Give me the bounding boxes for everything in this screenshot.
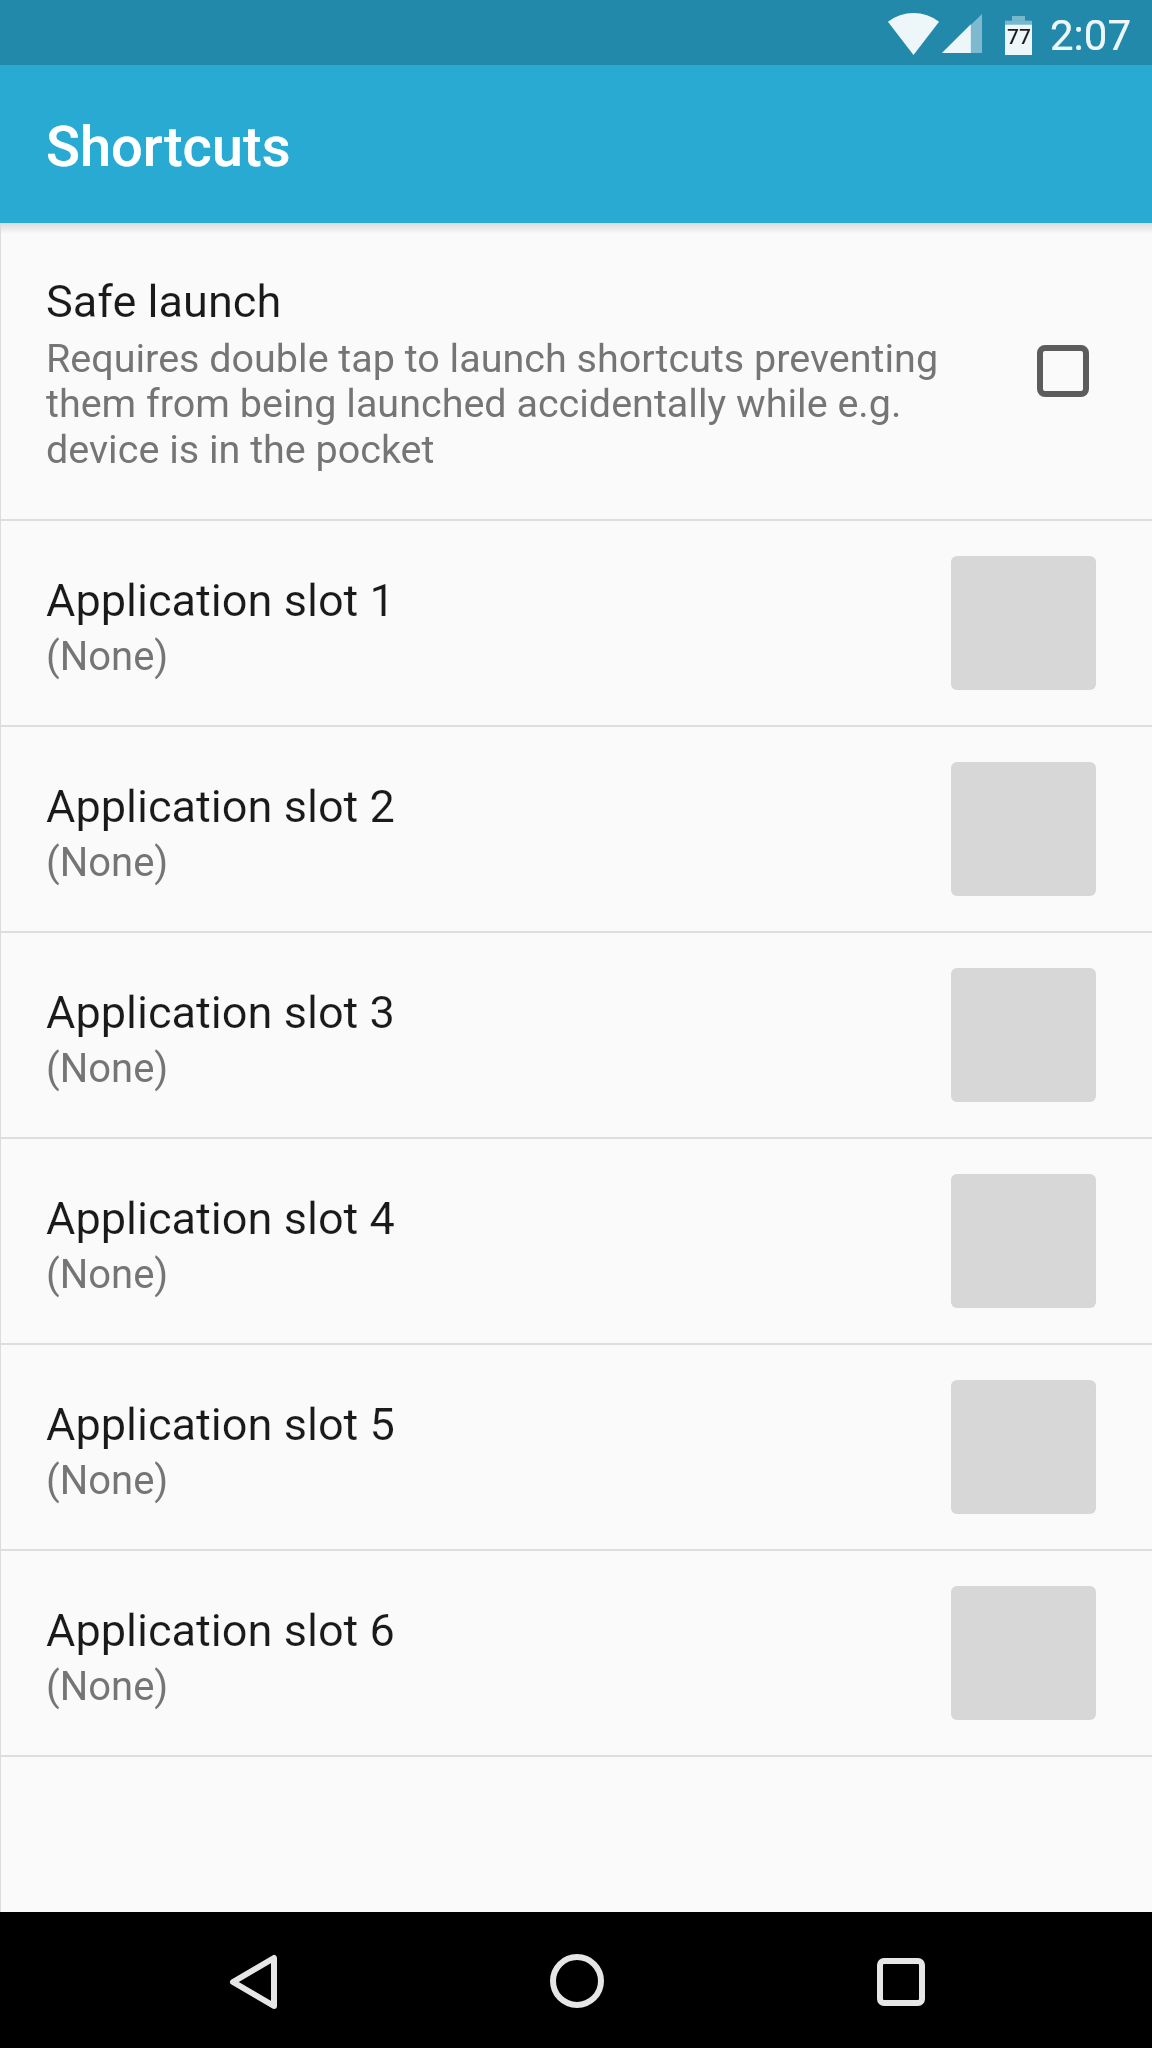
button[interactable]: Recents	[841, 1922, 961, 2042]
staticText: Safe launch	[46, 275, 282, 328]
button[interactable]: Application slot 1	[0, 521, 1152, 725]
button[interactable]: Safe launch checkbox	[989, 297, 1137, 445]
button[interactable]: Home	[517, 1921, 637, 2041]
staticText: 77	[1007, 25, 1031, 50]
staticText: (None)	[46, 1045, 169, 1092]
staticText: (None)	[46, 1457, 169, 1504]
staticText: (None)	[46, 1251, 169, 1298]
staticText: (None)	[46, 633, 169, 680]
button[interactable]: Application slot 6	[0, 1551, 1152, 1755]
staticText: Application slot 2	[46, 780, 395, 833]
staticText: Application slot 1	[46, 574, 395, 627]
staticText: Requires double tap to launch shortcuts …	[46, 335, 946, 473]
staticText: (None)	[46, 1663, 169, 1710]
staticText: Application slot 5	[46, 1398, 395, 1451]
button[interactable]: Application slot 3	[0, 933, 1152, 1137]
staticText: (None)	[46, 839, 169, 886]
staticText: Application slot 3	[46, 986, 395, 1039]
button[interactable]: Back	[193, 1922, 313, 2042]
button[interactable]: Application slot 5	[0, 1345, 1152, 1549]
button[interactable]: Application slot 4	[0, 1139, 1152, 1343]
staticText: Application slot 4	[46, 1192, 395, 1245]
button[interactable]: Application slot 2	[0, 727, 1152, 931]
button[interactable]: Safe launch	[0, 223, 1152, 519]
staticText: 2:07	[1050, 11, 1131, 60]
staticText: Shortcuts	[46, 114, 291, 180]
staticText: Application slot 6	[46, 1604, 395, 1657]
